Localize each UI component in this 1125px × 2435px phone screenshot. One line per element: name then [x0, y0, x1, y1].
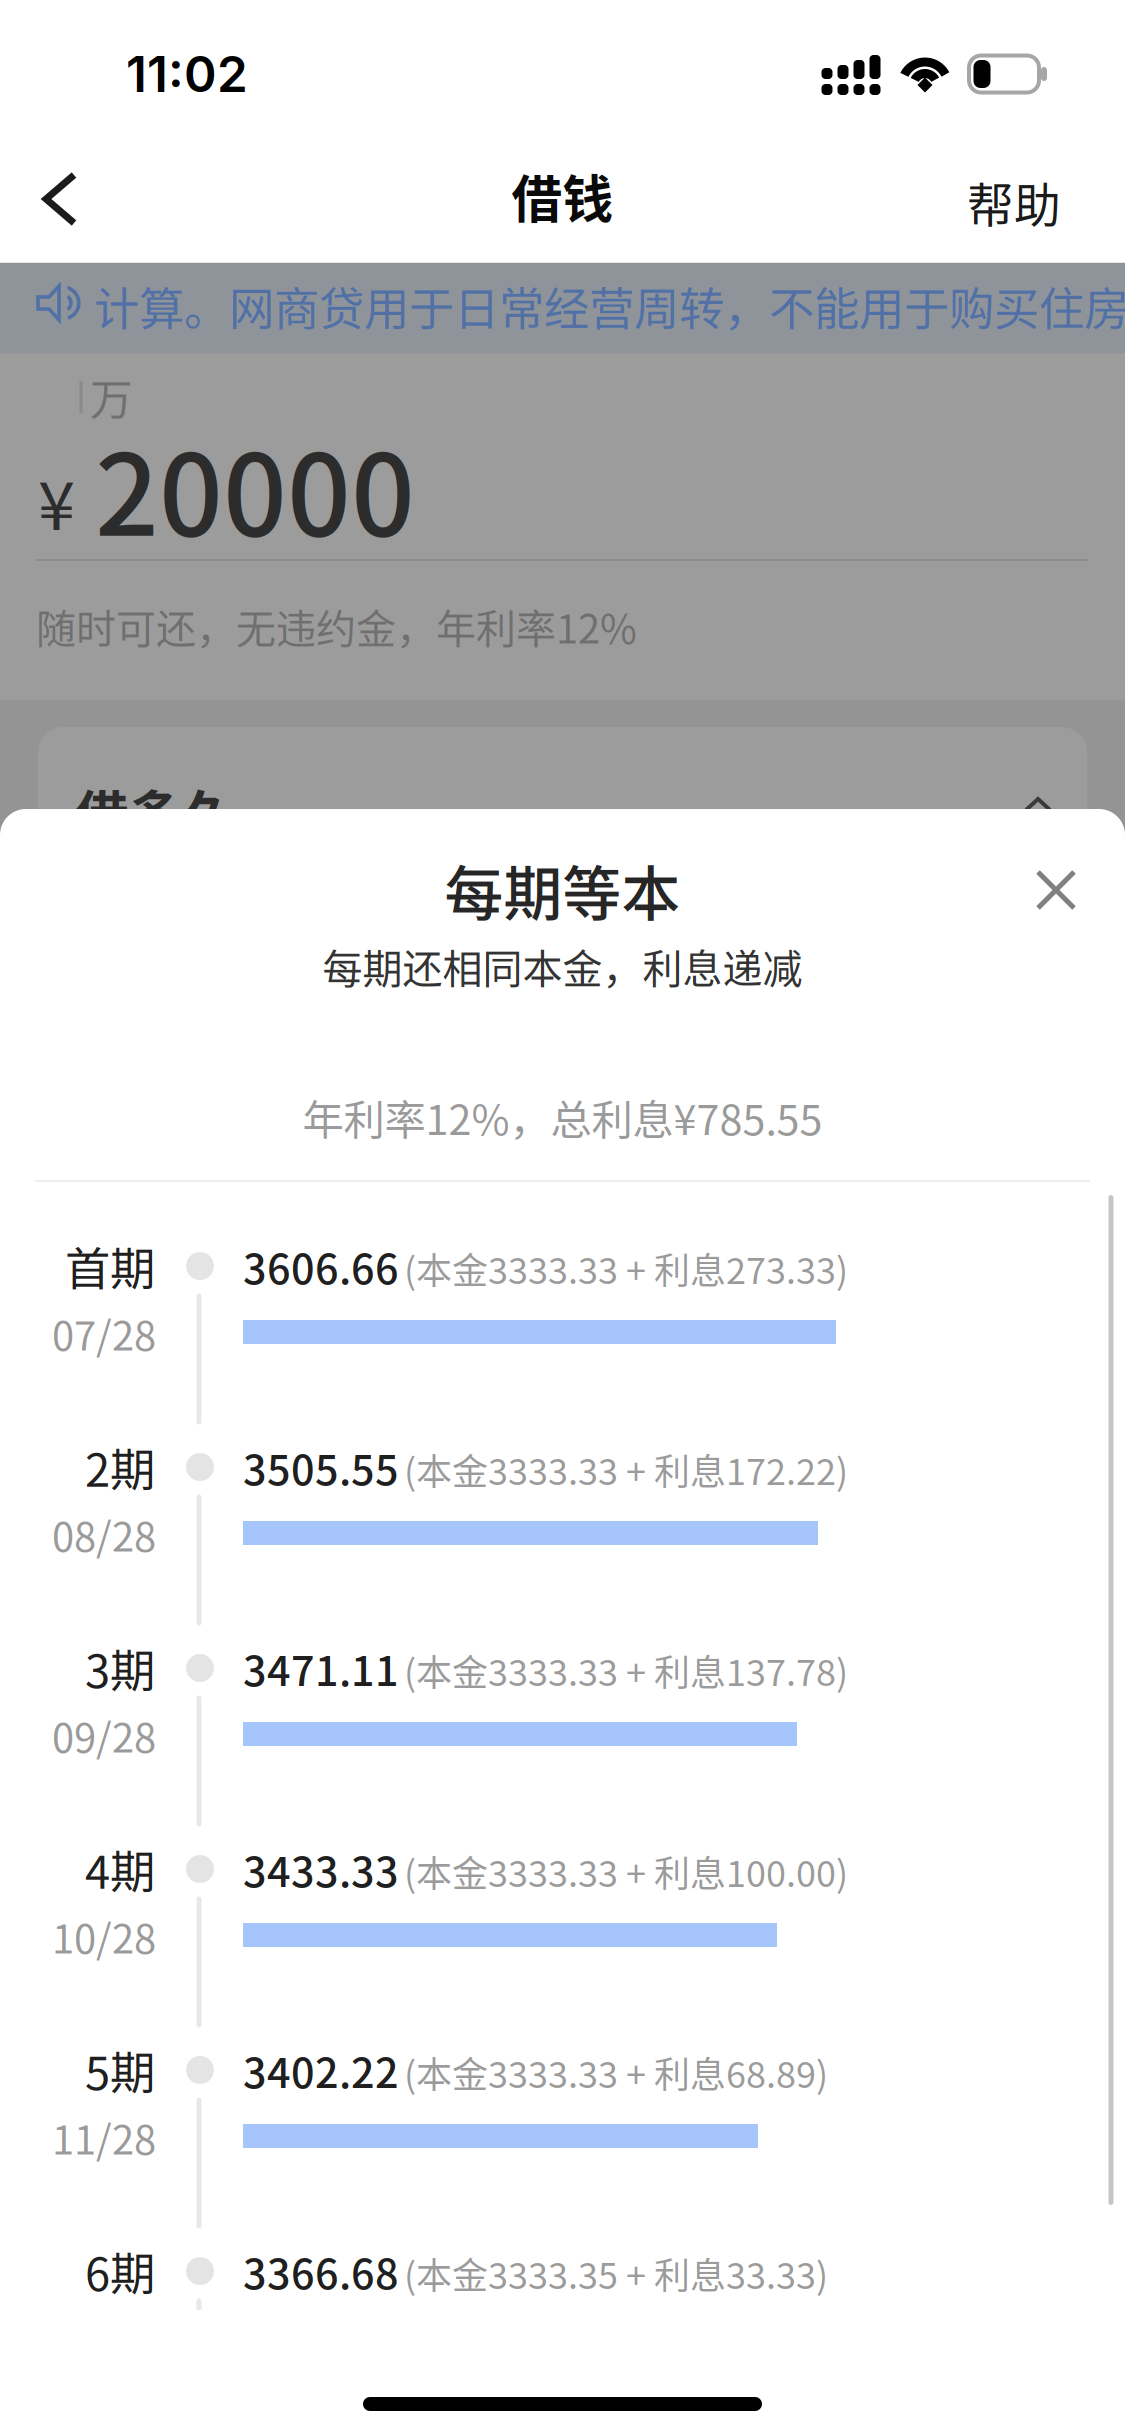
staticText: 借钱: [511, 159, 613, 233]
staticText: 随时可还，无违约金，年利率12%: [36, 597, 637, 655]
staticText: 10/28: [52, 1907, 156, 1965]
staticText: (本金3333.33 + 利息273.33): [404, 1242, 848, 1294]
staticText: 3402.22: [243, 2040, 399, 2100]
staticText: 11/28: [52, 2108, 156, 2166]
staticText: (本金3333.33 + 利息68.89): [404, 2046, 828, 2098]
staticText: 6期: [85, 2238, 155, 2304]
staticText: (本金3333.33 + 利息100.00): [404, 1845, 848, 1897]
staticText: 借多久: [75, 773, 234, 851]
staticText: (本金3333.35 + 利息33.33): [404, 2247, 828, 2299]
staticText: 11:02: [126, 44, 248, 104]
staticText: (本金3333.33 + 利息172.22): [404, 1443, 848, 1495]
staticText: 5期: [85, 2037, 155, 2103]
staticText: (本金3333.33 + 利息137.78): [404, 1644, 848, 1696]
staticText: 3期: [85, 1635, 155, 1701]
staticText: 20000: [95, 406, 415, 568]
staticText: 每期还相同本金，利息递减: [322, 937, 802, 995]
staticText: 3366.68: [243, 2241, 399, 2301]
staticText: 3505.55: [243, 1437, 399, 1497]
button[interactable]: Back: [17, 147, 127, 257]
staticText: 4期: [85, 1836, 155, 1902]
staticText: 帮助: [967, 168, 1061, 236]
staticText: 09/28: [52, 1706, 156, 1764]
staticText: ¥: [38, 453, 75, 549]
staticText: 3433.33: [243, 1839, 399, 1899]
staticText: 3471.11: [243, 1638, 399, 1698]
button[interactable]: 帮助: [934, 147, 1094, 257]
staticText: 万: [90, 366, 133, 428]
button[interactable]: Close: [1006, 840, 1106, 940]
staticText: 年利率12%，总利息¥785.55: [302, 1087, 822, 1147]
staticText: 2期: [85, 1434, 155, 1500]
staticText: 每期等本: [444, 847, 680, 932]
staticText: 3606.66: [243, 1236, 399, 1296]
staticText: 08/28: [52, 1505, 156, 1563]
staticText: 计算。网商贷用于日常经营周转，不能用于购买住房、偿还房屋: [94, 273, 1125, 339]
staticText: 首期: [65, 1233, 155, 1299]
staticText: 07/28: [52, 1304, 156, 1362]
